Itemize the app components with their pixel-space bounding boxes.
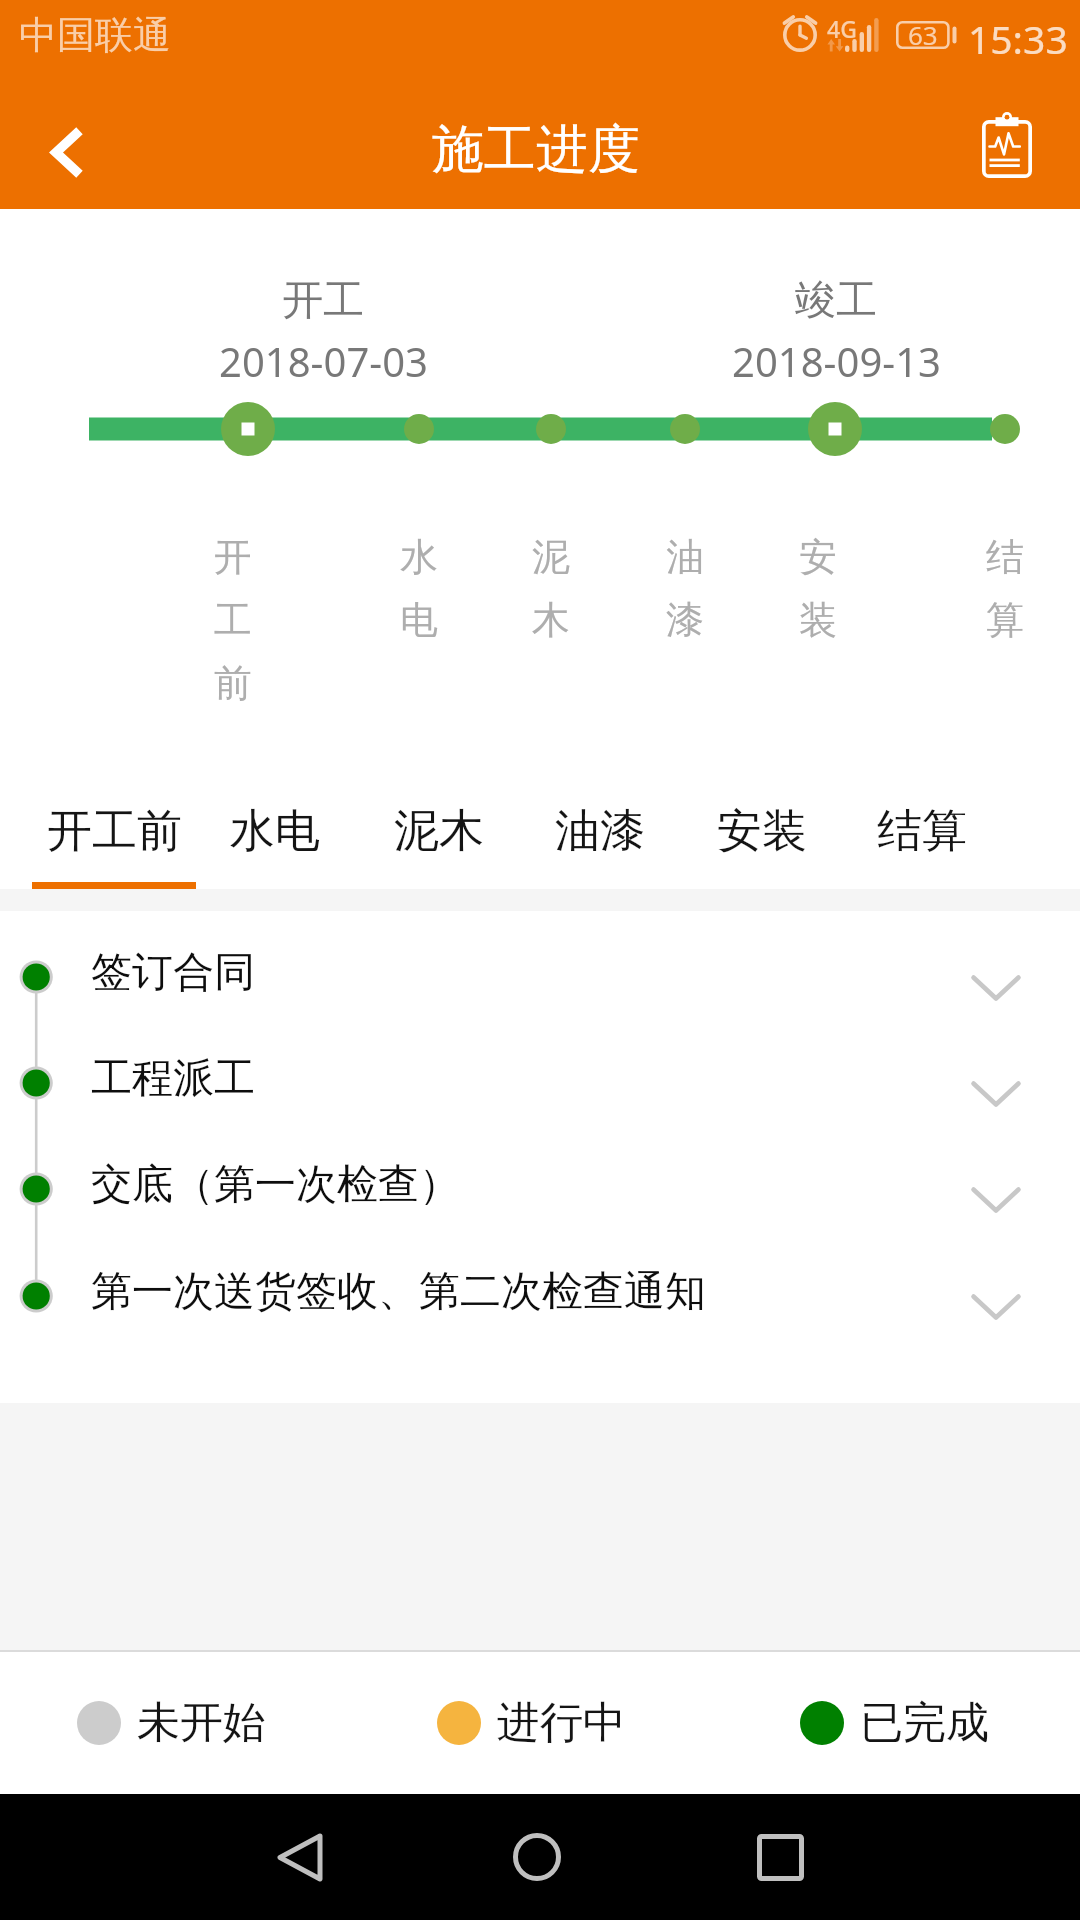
button[interactable]: Recent apps xyxy=(735,1812,825,1902)
button[interactable]: 开工前 xyxy=(28,765,200,883)
button[interactable]: 结算 xyxy=(860,765,984,883)
staticText: 2018-09-13 xyxy=(732,334,941,388)
staticText: 泥木 xyxy=(394,803,484,860)
staticText: 中国联通 xyxy=(19,11,171,59)
staticText: 竣工 xyxy=(795,275,877,327)
staticText: 第一次送货签收、第二次检查通知 xyxy=(91,1266,706,1318)
button[interactable]: 交底（第一次检查） xyxy=(0,1136,1080,1241)
button[interactable]: 油 漆 xyxy=(615,533,755,763)
staticText: 施工进度 xyxy=(432,117,640,183)
staticText: 油 漆 xyxy=(615,533,755,644)
button[interactable]: 结 算 xyxy=(935,533,1075,763)
button[interactable]: Home xyxy=(495,1812,585,1902)
staticText: 水 电 xyxy=(349,533,489,644)
staticText: 结 算 xyxy=(935,533,1075,644)
button[interactable]: 进行中 xyxy=(437,1696,626,1750)
button[interactable]: 工程派工 xyxy=(0,1030,1080,1135)
button[interactable]: 泥 木 xyxy=(481,533,621,763)
button[interactable]: Back xyxy=(255,1812,345,1902)
staticText: 63 xyxy=(908,17,938,52)
staticText: 已完成 xyxy=(860,1696,989,1750)
staticText: 未开始 xyxy=(137,1696,266,1750)
staticText: 水电 xyxy=(230,803,320,860)
staticText: 结算 xyxy=(877,803,967,860)
staticText: 开工 xyxy=(282,275,364,327)
button[interactable]: Inspection report xyxy=(962,72,1056,209)
staticText: 泥 木 xyxy=(481,533,621,644)
staticText: 4G xyxy=(827,13,857,44)
button[interactable]: 签订合同 xyxy=(0,924,1080,1029)
button[interactable]: 第一次送货签收、第二次检查通知 xyxy=(0,1243,1080,1348)
staticText: 安装 xyxy=(717,803,807,860)
staticText: 15:33 xyxy=(968,12,1068,65)
staticText: 油漆 xyxy=(555,803,645,860)
staticText: 进行中 xyxy=(497,1696,626,1750)
staticText: 开 工 前 xyxy=(163,533,303,707)
staticText: 签订合同 xyxy=(91,947,255,999)
staticText: 工程派工 xyxy=(91,1053,255,1105)
staticText: 安 装 xyxy=(748,533,888,644)
button[interactable]: 泥木 xyxy=(377,765,501,883)
staticText: 2018-07-03 xyxy=(219,334,428,388)
button[interactable]: 安 装 xyxy=(748,533,888,763)
button[interactable]: 油漆 xyxy=(538,765,662,883)
staticText: 开工前 xyxy=(47,803,182,860)
button[interactable]: 未开始 xyxy=(77,1696,266,1750)
button[interactable]: Back xyxy=(12,86,116,223)
staticText: 交底（第一次检查） xyxy=(91,1159,460,1211)
button[interactable]: 已完成 xyxy=(800,1696,989,1750)
button[interactable]: 开 工 前 xyxy=(163,533,303,763)
button[interactable]: 水电 xyxy=(213,765,337,883)
button[interactable]: 水 电 xyxy=(349,533,489,763)
button[interactable]: 安装 xyxy=(700,765,824,883)
